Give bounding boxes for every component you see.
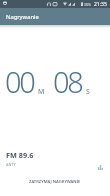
other: Equalizer [98, 165, 103, 170]
staticText: 08 [53, 62, 82, 101]
staticText: ZATRZYMAJ NAGRYWANIE [29, 179, 81, 185]
staticText: 00 [5, 62, 34, 101]
staticText: M [38, 87, 45, 97]
staticText: 21:35 [94, 1, 107, 8]
staticText: Nagrywanie [6, 13, 39, 21]
staticText: ANTY [6, 162, 16, 167]
staticText: S [86, 87, 90, 97]
button[interactable]: ZATRZYMAJ NAGRYWANIE [0, 175, 110, 189]
staticText: 30% [84, 2, 92, 7]
staticText: FM 89.6 [6, 150, 34, 160]
